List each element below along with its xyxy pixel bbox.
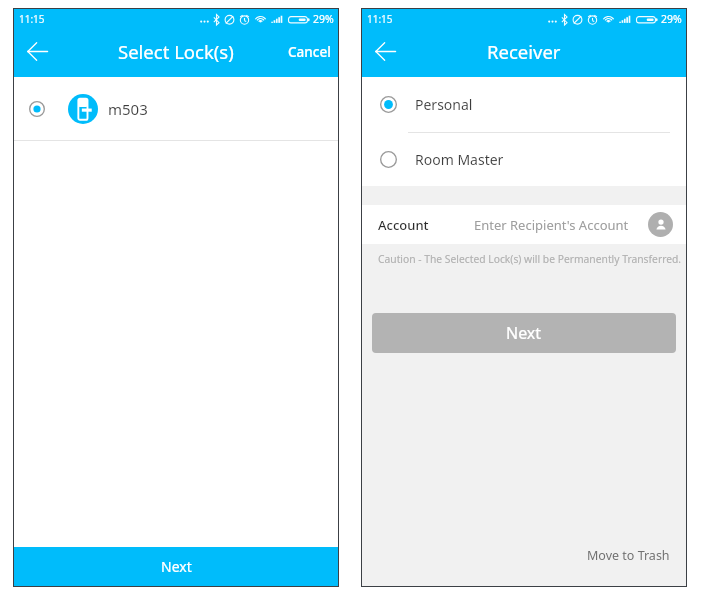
button[interactable]: Move to Trash [583,543,674,568]
staticText: Receiver [487,39,561,64]
staticText: m503 [108,99,148,119]
button[interactable]: Next [372,313,676,353]
button[interactable]: Back [14,30,61,77]
staticText: 11:15 [367,12,393,26]
staticText: Caution - The Selected Lock(s) will be P… [378,252,682,266]
staticText: Next [506,322,542,344]
staticText: Next [161,557,192,576]
staticText: 11:15 [19,12,45,26]
button[interactable]: Cancel [277,28,338,75]
button[interactable]: m503 [14,77,338,140]
button[interactable]: Room Master [362,133,686,186]
staticText: Move to Trash [587,547,670,564]
button[interactable]: Next [14,547,338,586]
button[interactable]: Personal [362,77,686,132]
staticText: Cancel [288,43,331,61]
staticText: Room Master [415,150,504,169]
button[interactable]: Pick contact [648,212,673,237]
staticText: 29% [313,12,334,26]
staticText: Account [378,216,429,234]
staticText: Personal [415,95,473,114]
staticText: Enter Recipient's Account [474,216,629,234]
staticText: 29% [661,12,682,26]
staticText: Select Lock(s) [118,39,234,64]
button[interactable]: Back [362,30,409,77]
